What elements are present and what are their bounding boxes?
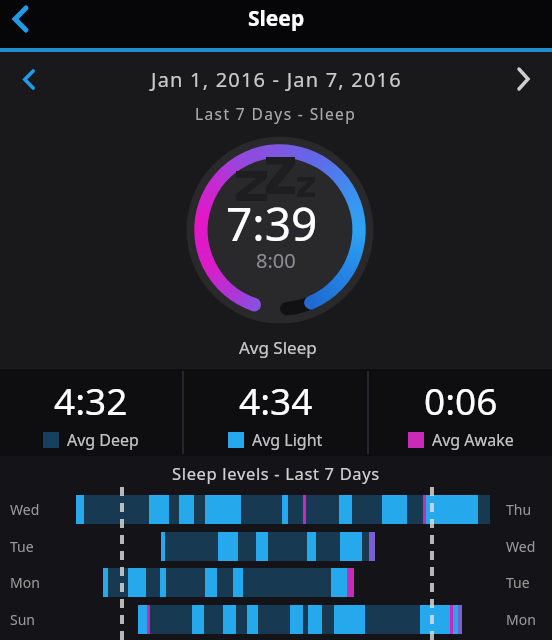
staticText: Mon (506, 610, 536, 628)
staticText: 7:39 (226, 192, 318, 255)
staticText: 4:34 (239, 375, 313, 425)
staticText: Sun (10, 610, 35, 628)
staticText: 0:06 (424, 375, 498, 425)
button[interactable]: 0:06 (369, 369, 552, 456)
staticText: Wed (10, 500, 40, 518)
staticText: 4:32 (54, 375, 128, 425)
staticText: 8:00 (256, 247, 296, 274)
staticText: Sleep (248, 4, 305, 33)
staticText: Last 7 Days - Sleep (195, 103, 357, 124)
staticText: Tue (506, 573, 530, 591)
staticText: Tue (10, 537, 34, 555)
button[interactable] (14, 62, 44, 96)
staticText: Sleep levels - Last 7 Days (172, 462, 380, 484)
staticText: Avg Awake (432, 429, 514, 451)
button[interactable] (508, 62, 538, 96)
staticText: Jan 1, 2016 - Jan 7, 2016 (151, 66, 402, 93)
staticText: Wed (506, 537, 536, 555)
staticText: Thu (506, 500, 532, 518)
staticText: Avg Light (252, 429, 323, 451)
button[interactable]: 4:34 (184, 369, 367, 456)
staticText: Avg Deep (67, 429, 139, 451)
staticText: Avg Sleep (239, 336, 317, 359)
staticText: Mon (10, 573, 40, 591)
button[interactable]: 4:32 (0, 369, 182, 456)
button[interactable] (0, 0, 40, 37)
